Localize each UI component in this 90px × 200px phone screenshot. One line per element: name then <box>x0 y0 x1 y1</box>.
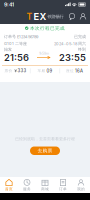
staticText: 去购票 <box>37 148 52 154</box>
staticText: 已经到底啦，去首页看看更多行程 <box>15 136 75 141</box>
button[interactable]: 去购票 <box>30 146 60 155</box>
staticText: G101 二等座 <box>4 41 27 46</box>
staticText: T <box>26 11 32 22</box>
staticText: 09 <box>46 68 52 73</box>
staticText: 23:55 <box>59 52 86 63</box>
staticText: 已完成 <box>74 34 86 39</box>
staticText: 订单号 E123456789 <box>4 34 38 39</box>
staticText: 商城 <box>41 187 49 191</box>
button[interactable]: 我的 <box>72 177 90 193</box>
staticText: 21:56 <box>4 52 29 63</box>
staticText: 始发 <box>4 47 12 52</box>
staticText: 首页 <box>5 187 13 191</box>
button[interactable]: 我的 <box>79 12 87 20</box>
staticText: 本次行程已完成 <box>30 25 65 31</box>
staticText: 我的 <box>77 187 85 191</box>
staticText: 票价 <box>4 68 12 73</box>
staticText: 服务 <box>23 187 31 191</box>
staticText: 车厢 <box>37 68 45 73</box>
button[interactable]: 客服 <box>68 12 76 20</box>
staticText: ￥333 <box>13 68 26 74</box>
staticText: 座位 <box>66 68 74 73</box>
staticText: 订单 <box>59 187 67 191</box>
button[interactable]: 服务 <box>18 177 36 193</box>
staticText: 2024-05-18 周六 <box>54 41 86 46</box>
button[interactable]: 商城 <box>36 177 54 193</box>
staticText: 9:41 <box>4 1 14 8</box>
staticText: 1h59m <box>39 51 49 55</box>
staticText: 铁路畅行 <box>47 14 63 19</box>
button[interactable]: 首页 <box>0 177 18 193</box>
staticText: EX <box>33 11 46 22</box>
button[interactable]: 订单 <box>54 177 72 193</box>
staticText: 16A <box>75 68 83 73</box>
staticText: 终到 <box>78 47 86 52</box>
